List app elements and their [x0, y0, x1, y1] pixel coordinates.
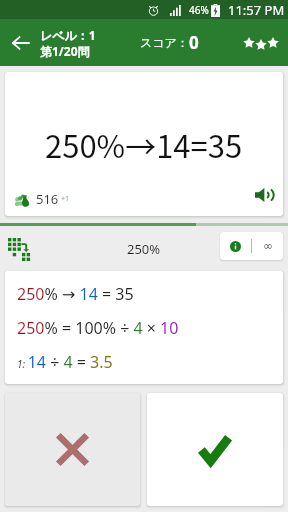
- staticText: 516: [36, 190, 59, 208]
- button[interactable]: Wrong: [5, 393, 140, 506]
- staticText: 11:57 PM: [228, 1, 285, 19]
- button[interactable]: Hint: [6, 236, 32, 262]
- staticText: レベル：1: [40, 27, 96, 43]
- button[interactable]: Correct: [147, 393, 283, 506]
- staticText: スコア：: [140, 35, 189, 50]
- staticText: 250%: [127, 240, 161, 258]
- staticText: 46%: [189, 3, 209, 17]
- button[interactable]: Back: [6, 28, 36, 58]
- button[interactable]: Play sound: [251, 182, 277, 208]
- staticText: 0: [189, 31, 199, 54]
- staticText: +1: [61, 194, 70, 204]
- button[interactable]: Unlimited: [252, 232, 283, 260]
- staticText: 250% = 100% ÷ 4 × 10: [17, 317, 179, 339]
- staticText: ∞: [263, 239, 273, 253]
- staticText: 第1/20問: [40, 43, 90, 59]
- staticText: 1: 14 ÷ 4 = 3.5: [17, 351, 113, 373]
- staticText: 250%→14=35: [45, 122, 243, 167]
- staticText: 250% → 14 = 35: [17, 283, 134, 305]
- button[interactable]: Info: [220, 232, 251, 260]
